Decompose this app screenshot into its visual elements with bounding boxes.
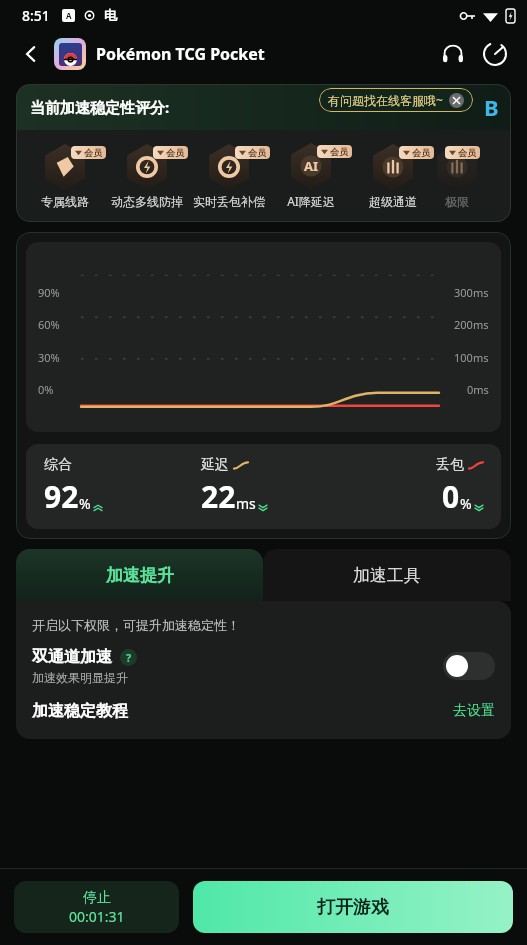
staticText: 综合 (44, 456, 72, 474)
staticText: 会员 (248, 147, 266, 158)
staticText: % (79, 494, 91, 513)
staticText: A (66, 10, 72, 21)
button[interactable]: Customer service (435, 36, 471, 72)
button[interactable]: 会员 (106, 144, 188, 209)
other: Help (120, 649, 137, 666)
button[interactable]: 打开游戏 (193, 881, 513, 933)
staticText: 打开游戏 (317, 896, 389, 919)
staticText: 0% (38, 382, 54, 397)
button[interactable]: 加速工具 (263, 549, 511, 601)
button[interactable]: 有问题找在线客服哦~ (319, 88, 473, 112)
staticText: 丢包 (436, 456, 464, 474)
staticText: 200ms (454, 317, 489, 332)
staticText: 专属线路 (41, 194, 89, 209)
staticText: % (460, 494, 472, 513)
button[interactable]: 会员 (24, 144, 106, 209)
staticText: 加速提升 (106, 565, 174, 586)
staticText: 90% (38, 285, 60, 300)
staticText: AI (304, 157, 319, 175)
staticText: 60% (38, 317, 60, 332)
staticText: 92 (44, 476, 79, 517)
staticText: 22 (201, 476, 236, 517)
button[interactable]: 停止 (14, 881, 179, 933)
staticText: 00:01:31 (69, 907, 125, 926)
staticText: 延迟 (201, 456, 229, 474)
staticText: 0ms (467, 382, 489, 397)
staticText: AI降延迟 (287, 193, 335, 209)
staticText: 会员 (84, 147, 102, 158)
staticText: 电 (104, 7, 117, 23)
button[interactable]: Back (14, 37, 48, 71)
staticText: 开启以下权限，可提升加速稳定性！ (32, 617, 240, 633)
staticText: 去设置 (453, 702, 495, 720)
button[interactable]: 会员 (188, 144, 270, 209)
staticText: ? (126, 650, 132, 665)
button[interactable]: Dual channel acceleration toggle (443, 652, 495, 680)
button[interactable]: 加速稳定教程 (32, 701, 495, 721)
button[interactable]: 会员 (352, 144, 434, 209)
staticText: 会员 (458, 147, 476, 158)
staticText: 30% (38, 350, 60, 365)
staticText: 300ms (454, 285, 489, 300)
staticText: 会员 (166, 147, 184, 158)
button[interactable]: 加速提升 (16, 549, 263, 601)
staticText: 动态多线防掉 (111, 194, 183, 209)
staticText: 有问题找在线客服哦~ (328, 92, 443, 108)
staticText: 加速稳定教程 (32, 701, 453, 721)
staticText: 实时丢包补偿 (193, 194, 265, 209)
button[interactable]: Boost (477, 36, 513, 72)
staticText: B (484, 92, 499, 122)
staticText: 加速工具 (353, 565, 421, 586)
staticText: 双通道加速 (32, 647, 112, 667)
button[interactable]: 会员 (434, 144, 480, 209)
staticText: Pokémon TCG Pocket (96, 43, 265, 65)
staticText: 会员 (330, 146, 348, 157)
other: Close (449, 93, 464, 108)
staticText: 加速效果明显提升 (32, 670, 128, 685)
staticText: 100ms (454, 350, 489, 365)
staticText: ms (236, 494, 256, 513)
staticText: 0 (442, 476, 460, 517)
staticText: 超级通道 (369, 194, 417, 209)
staticText: 停止 (83, 889, 111, 907)
button[interactable]: 双通道加速 (32, 647, 495, 685)
staticText: 会员 (412, 147, 430, 158)
staticText: 8:51 (22, 6, 50, 25)
staticText: 当前加速稳定性评分: (30, 97, 170, 117)
button[interactable]: AI (270, 143, 352, 209)
staticText: 极限 (445, 194, 469, 209)
